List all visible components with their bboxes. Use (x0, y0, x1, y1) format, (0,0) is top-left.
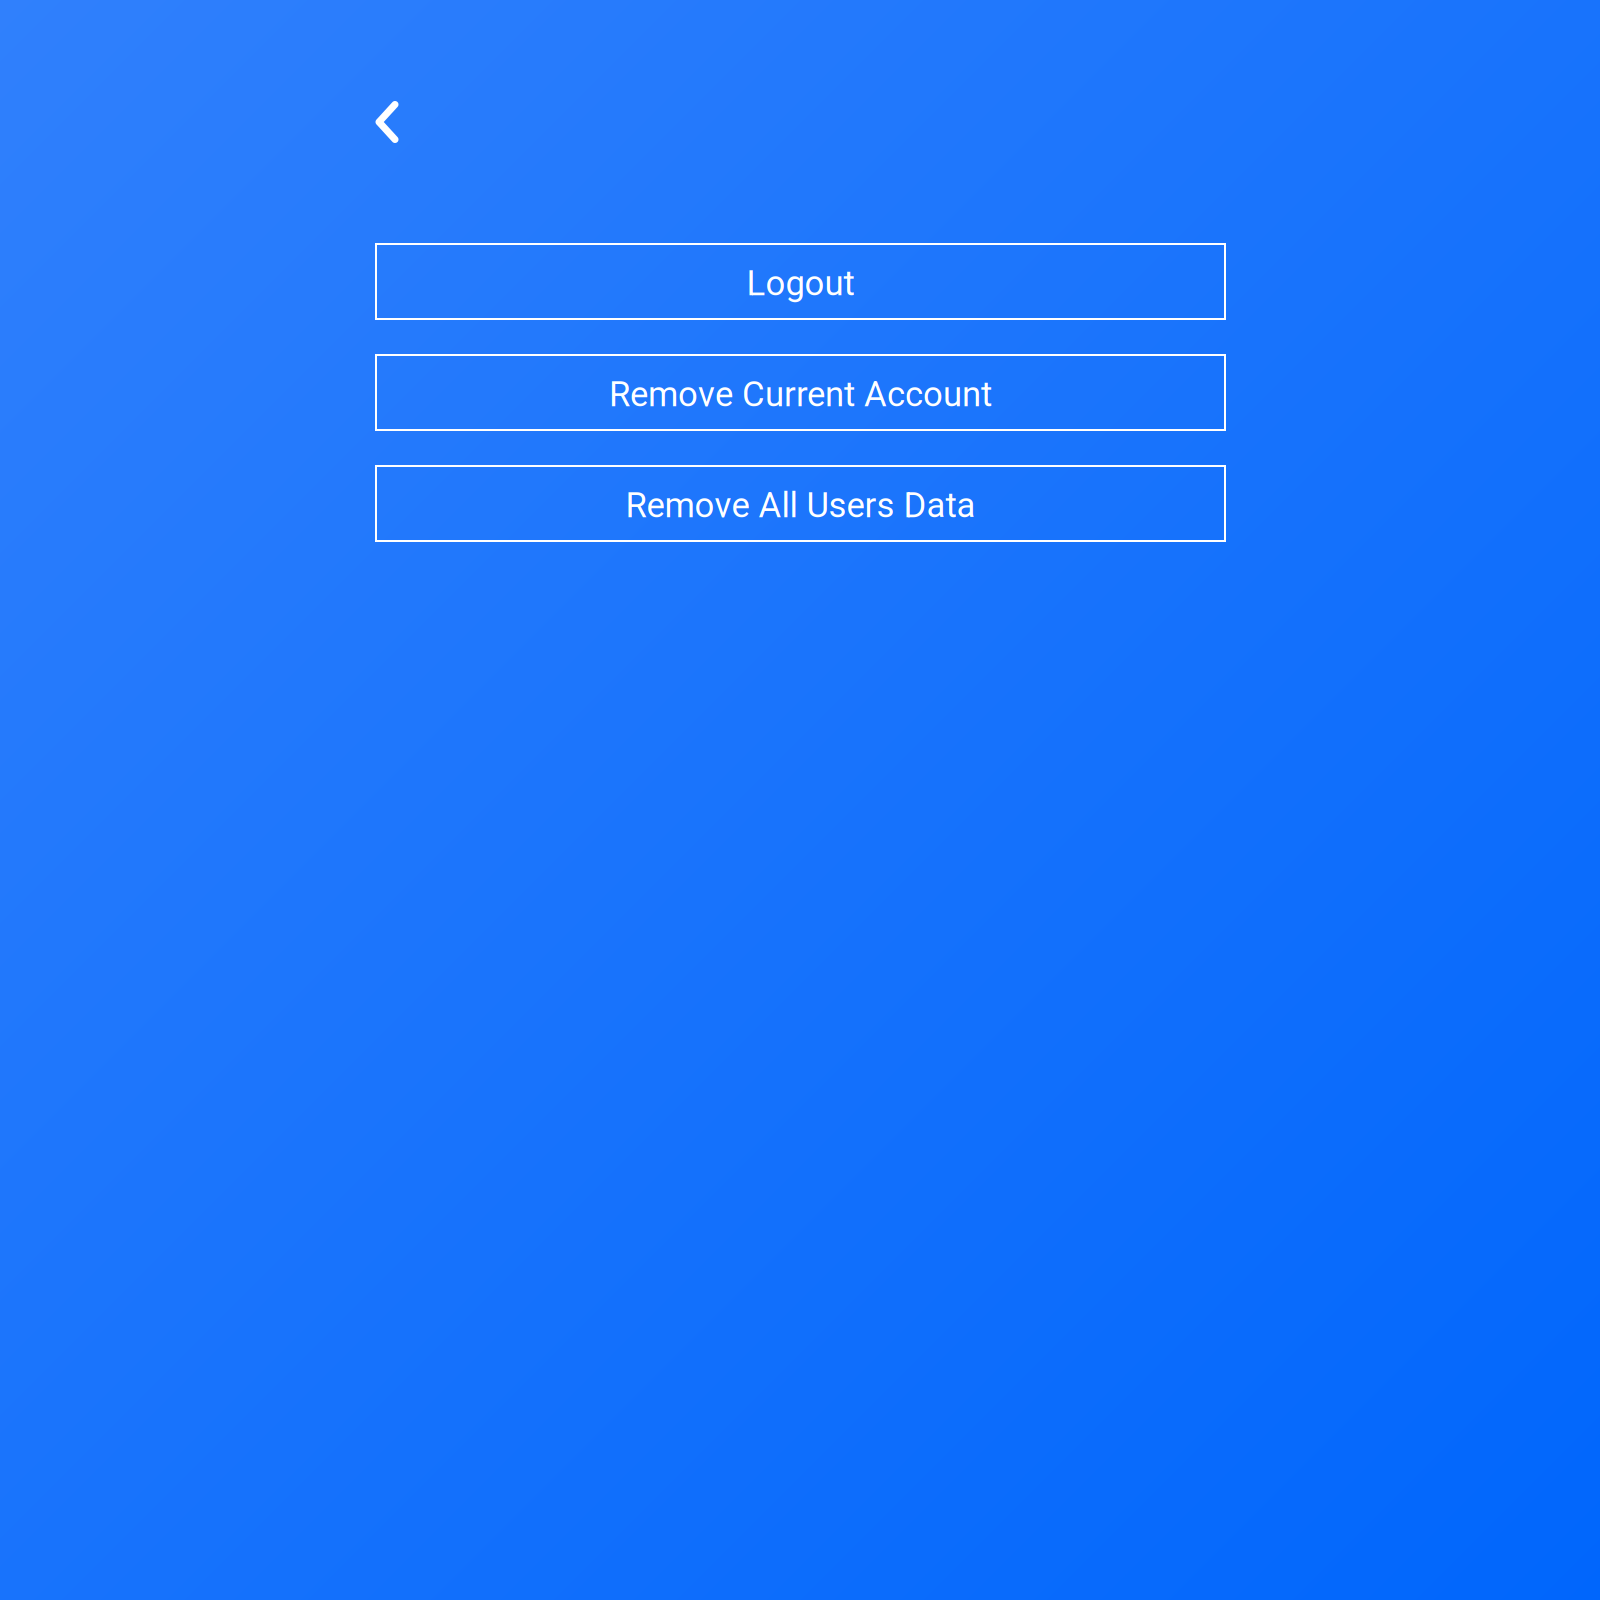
staticText: Remove Current Account (609, 374, 992, 415)
button[interactable]: Back (364, 92, 410, 152)
button[interactable]: Remove All Users Data (376, 466, 1225, 541)
staticText: Logout (746, 263, 854, 304)
button[interactable]: Logout (376, 244, 1225, 319)
staticText: Remove All Users Data (625, 485, 975, 526)
button[interactable]: Remove Current Account (376, 355, 1225, 430)
